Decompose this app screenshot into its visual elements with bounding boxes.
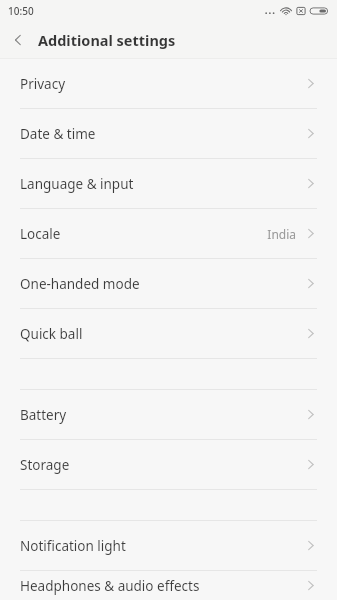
- staticText: Notification light: [20, 537, 126, 555]
- button[interactable]: Headphones & audio effects: [0, 571, 337, 600]
- button[interactable]: Privacy: [0, 59, 337, 108]
- button[interactable]: Language & input: [0, 159, 337, 208]
- button[interactable]: Quick ball: [0, 309, 337, 358]
- button[interactable]: Date & time: [0, 109, 337, 158]
- staticText: 10:50: [8, 4, 34, 18]
- staticText: Headphones & audio effects: [20, 577, 200, 595]
- button[interactable]: Battery: [0, 390, 337, 439]
- staticText: Language & input: [20, 175, 134, 193]
- button[interactable]: One-handed mode: [0, 259, 337, 308]
- button[interactable]: Locale: [0, 209, 337, 258]
- button[interactable]: Back: [0, 22, 36, 58]
- staticText: Quick ball: [20, 325, 83, 343]
- staticText: Date & time: [20, 125, 96, 143]
- button[interactable]: Storage: [0, 440, 337, 489]
- button[interactable]: Notification light: [0, 521, 337, 570]
- staticText: Privacy: [20, 75, 66, 93]
- staticText: Storage: [20, 456, 70, 474]
- staticText: Battery: [20, 406, 67, 424]
- staticText: One-handed mode: [20, 275, 140, 293]
- staticText: India: [267, 226, 296, 242]
- staticText: Additional settings: [38, 30, 176, 50]
- staticText: Locale: [20, 225, 61, 243]
